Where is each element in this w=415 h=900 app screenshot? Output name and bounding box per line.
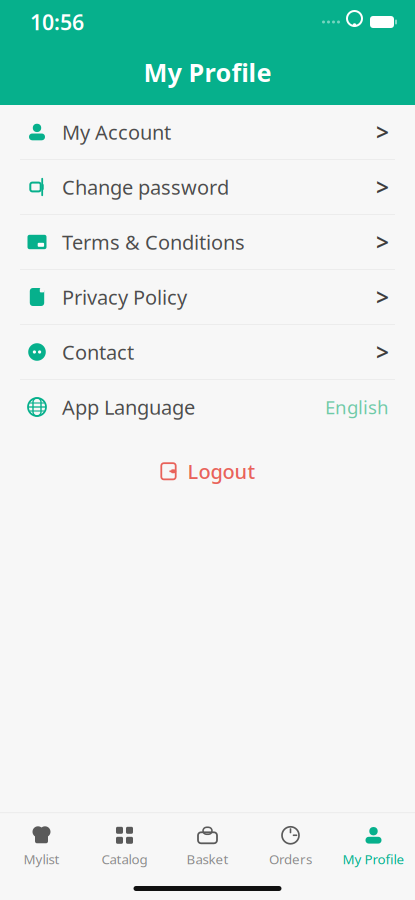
staticText: >	[376, 117, 389, 147]
button[interactable]: My Profile	[332, 813, 415, 876]
button[interactable]: Mylist	[0, 813, 83, 876]
staticText: My Account	[62, 119, 171, 145]
staticText: English	[325, 395, 389, 419]
staticText: App Language	[62, 394, 195, 420]
staticText: Contact	[62, 339, 134, 365]
staticText: >	[376, 227, 389, 257]
staticText: >	[376, 282, 389, 312]
staticText: Catalog	[101, 850, 147, 868]
staticText: My Profile	[342, 850, 404, 868]
staticText: 10:56	[30, 8, 84, 36]
button[interactable]: Contact	[0, 325, 415, 379]
staticText: >	[376, 337, 389, 367]
staticText: Mylist	[23, 850, 59, 868]
staticText: Orders	[269, 850, 312, 868]
staticText: Basket	[186, 850, 228, 868]
staticText: My Profile	[143, 55, 271, 89]
staticText: Logout	[187, 458, 255, 485]
staticText: >	[376, 172, 389, 202]
staticText: Privacy Policy	[62, 284, 187, 310]
button[interactable]: Basket	[166, 813, 249, 876]
button[interactable]: Logout	[145, 448, 269, 495]
button[interactable]: Terms & Conditions	[0, 215, 415, 269]
button[interactable]: App Language	[0, 380, 415, 434]
button[interactable]: My Account	[0, 105, 415, 159]
button[interactable]: Privacy Policy	[0, 270, 415, 324]
button[interactable]: Catalog	[83, 813, 166, 876]
staticText: Change password	[62, 174, 229, 200]
button[interactable]: Change password	[0, 160, 415, 214]
staticText: Terms & Conditions	[62, 229, 245, 255]
button[interactable]: Orders	[249, 813, 332, 876]
